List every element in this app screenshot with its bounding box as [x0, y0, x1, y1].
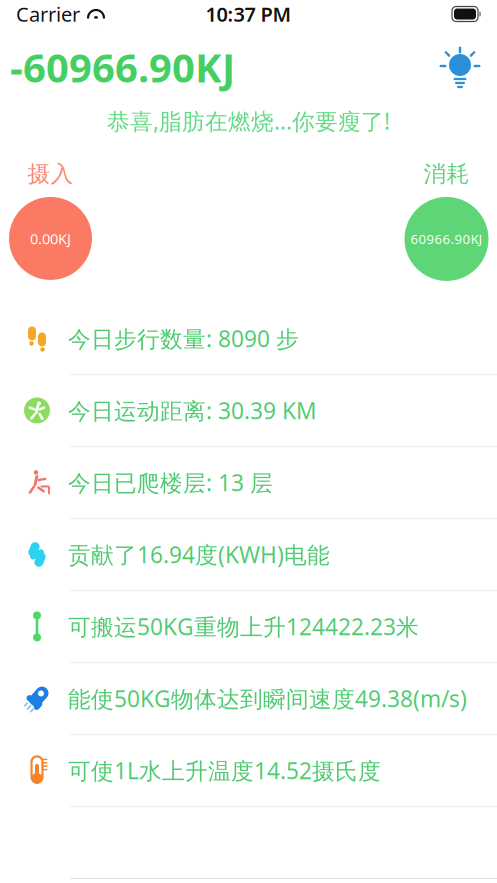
staticText: 0.00KJ	[30, 229, 71, 248]
staticText: 可使1L水上升温度14.52摄氏度	[68, 755, 381, 785]
button[interactable]: 能使50KG物体达到瞬间速度49.38(m/s)	[0, 662, 497, 734]
button[interactable]: 今日运动距离: 30.39 KM	[0, 374, 497, 446]
button[interactable]: 可使1L水上升温度14.52摄氏度	[0, 734, 497, 806]
staticText: 可搬运50KG重物上升124422.23米	[68, 611, 419, 641]
staticText: 恭喜,脂肪在燃烧...你要瘦了!	[107, 106, 390, 136]
button[interactable]: Tips	[437, 44, 483, 90]
staticText: 60966.90KJ	[410, 230, 482, 248]
staticText: 今日步行数量: 8090 步	[68, 323, 299, 353]
button[interactable]: 贡献了16.94度(KWH)电能	[0, 518, 497, 590]
staticText: 能使50KG物体达到瞬间速度49.38(m/s)	[68, 683, 467, 713]
staticText: 摄入	[27, 160, 73, 188]
staticText: 今日运动距离: 30.39 KM	[68, 395, 317, 425]
staticText: 贡献了16.94度(KWH)电能	[68, 539, 330, 569]
button[interactable]: 今日已爬楼层: 13 层	[0, 446, 497, 518]
staticText: Carrier	[16, 1, 80, 27]
button[interactable]: 今日步行数量: 8090 步	[0, 303, 497, 374]
staticText: 消耗	[423, 160, 469, 188]
button[interactable]: 可搬运50KG重物上升124422.23米	[0, 590, 497, 662]
staticText: 10:37 PM	[205, 1, 291, 27]
staticText: 今日已爬楼层: 13 层	[68, 467, 273, 497]
staticText: -60966.90KJ	[10, 40, 235, 93]
